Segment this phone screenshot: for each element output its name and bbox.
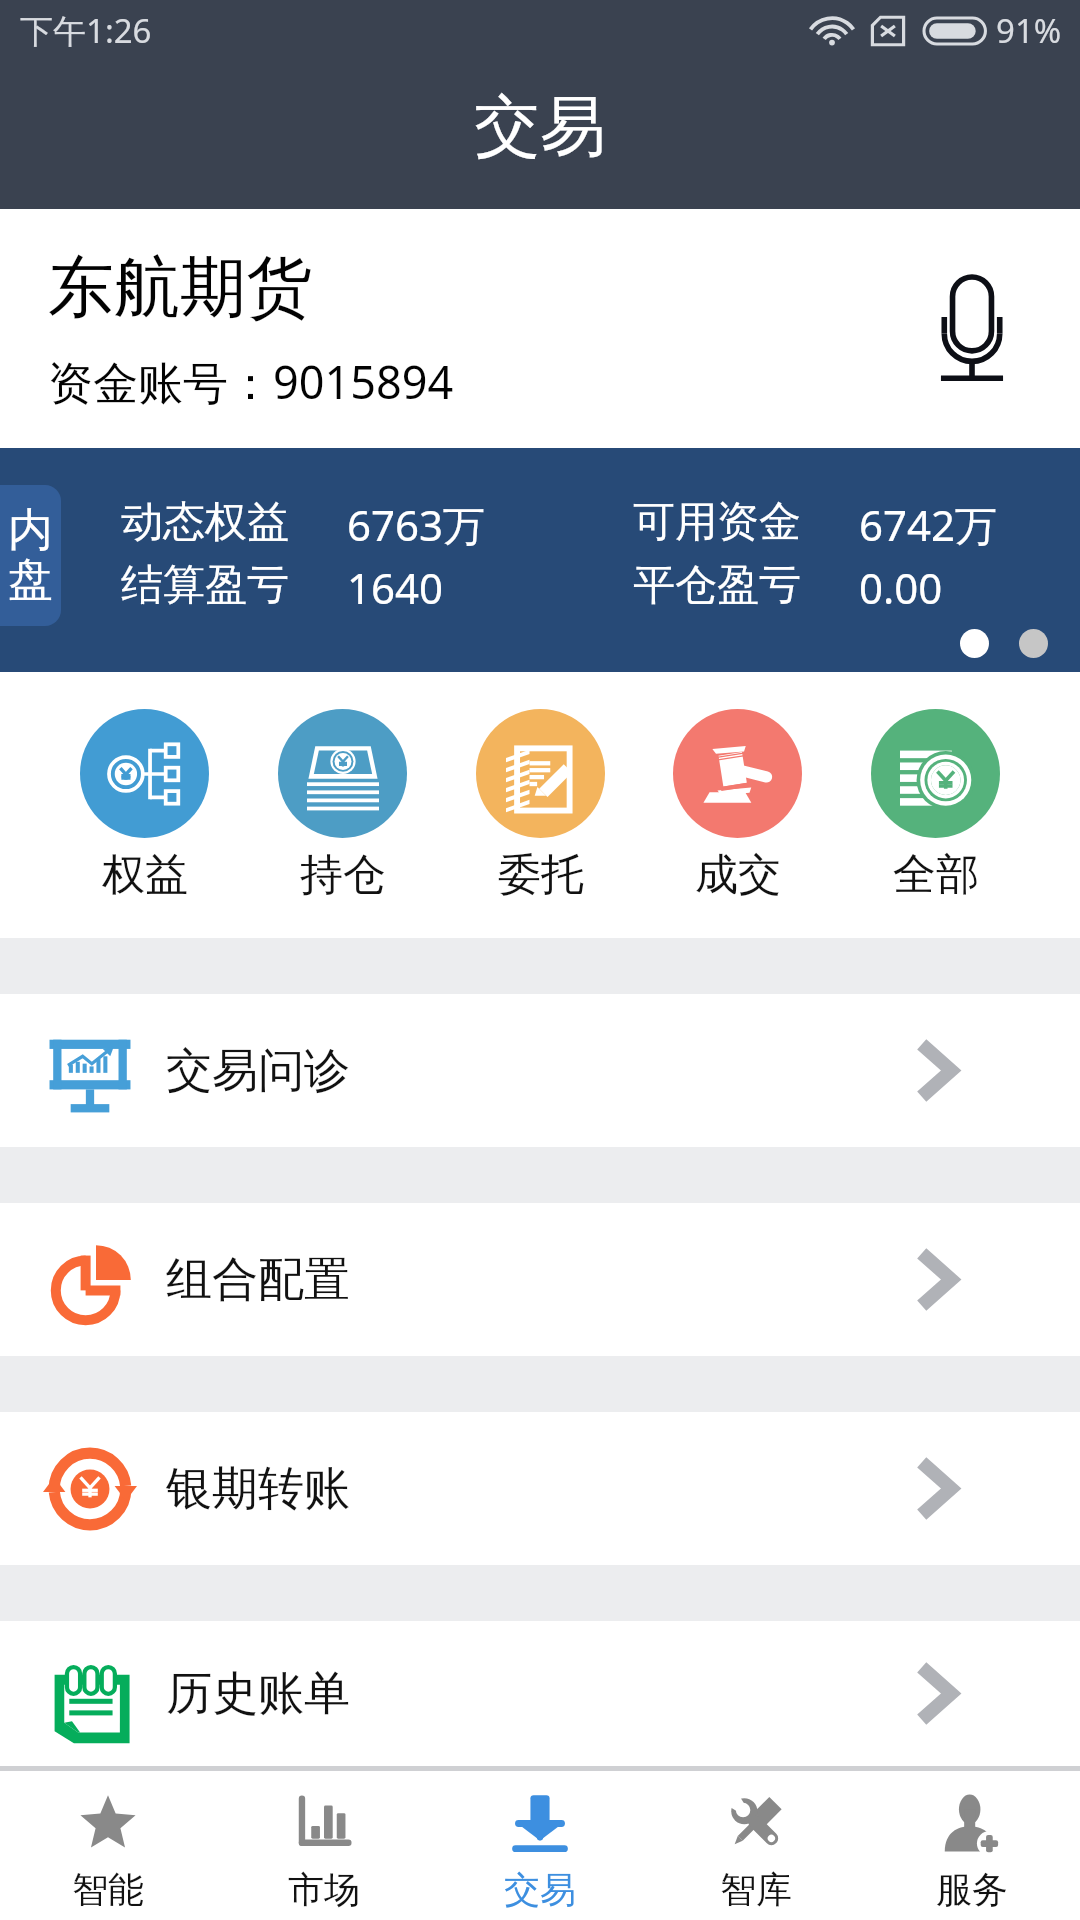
- button[interactable]: 智库: [648, 1771, 864, 1920]
- staticText: 组合配置: [166, 1251, 350, 1309]
- button[interactable]: 市场: [216, 1771, 432, 1920]
- staticText: 内 盘: [8, 502, 53, 609]
- button[interactable]: 交易问诊: [0, 994, 1080, 1147]
- staticText: 委托: [498, 848, 584, 902]
- staticText: 服务: [936, 1867, 1008, 1912]
- staticText: 成交: [695, 848, 781, 902]
- staticText: 交易: [504, 1867, 576, 1912]
- staticText: 智能: [72, 1867, 144, 1912]
- staticText: 下午1:26: [20, 8, 152, 53]
- button[interactable]: 智能: [0, 1771, 216, 1920]
- staticText: 6742万: [859, 496, 998, 553]
- staticText: 交易问诊: [166, 1042, 350, 1100]
- staticText: 交易: [474, 85, 606, 168]
- staticText: 智库: [720, 1867, 792, 1912]
- button[interactable]: 全部: [871, 709, 1000, 902]
- staticText: 可用资金: [633, 496, 801, 549]
- staticText: 银期转账: [166, 1460, 350, 1518]
- button[interactable]: 内 盘: [0, 485, 61, 626]
- staticText: 资金账号：9015894: [48, 351, 454, 412]
- staticText: 东航期货: [48, 246, 312, 329]
- staticText: 1640: [347, 559, 444, 616]
- button[interactable]: 银期转账: [0, 1412, 1080, 1565]
- button[interactable]: Voice input: [917, 274, 1027, 384]
- staticText: 6763万: [347, 496, 486, 553]
- button[interactable]: 服务: [864, 1771, 1080, 1920]
- staticText: 全部: [893, 848, 979, 902]
- staticText: 持仓: [300, 848, 386, 902]
- button[interactable]: 历史账单: [0, 1621, 1080, 1766]
- button[interactable]: 委托: [476, 709, 605, 902]
- button[interactable]: 权益: [80, 709, 209, 902]
- button[interactable]: 组合配置: [0, 1203, 1080, 1356]
- button[interactable]: 交易: [432, 1771, 648, 1920]
- staticText: 市场: [288, 1867, 360, 1912]
- button[interactable]: 成交: [673, 709, 802, 902]
- staticText: 结算盈亏: [121, 559, 289, 612]
- staticText: 动态权益: [121, 496, 289, 549]
- staticText: 权益: [102, 848, 188, 902]
- staticText: 91%: [996, 8, 1062, 53]
- button[interactable]: 持仓: [278, 709, 407, 902]
- staticText: 平仓盈亏: [633, 559, 801, 612]
- staticText: 0.00: [859, 559, 943, 616]
- staticText: 历史账单: [166, 1665, 350, 1723]
